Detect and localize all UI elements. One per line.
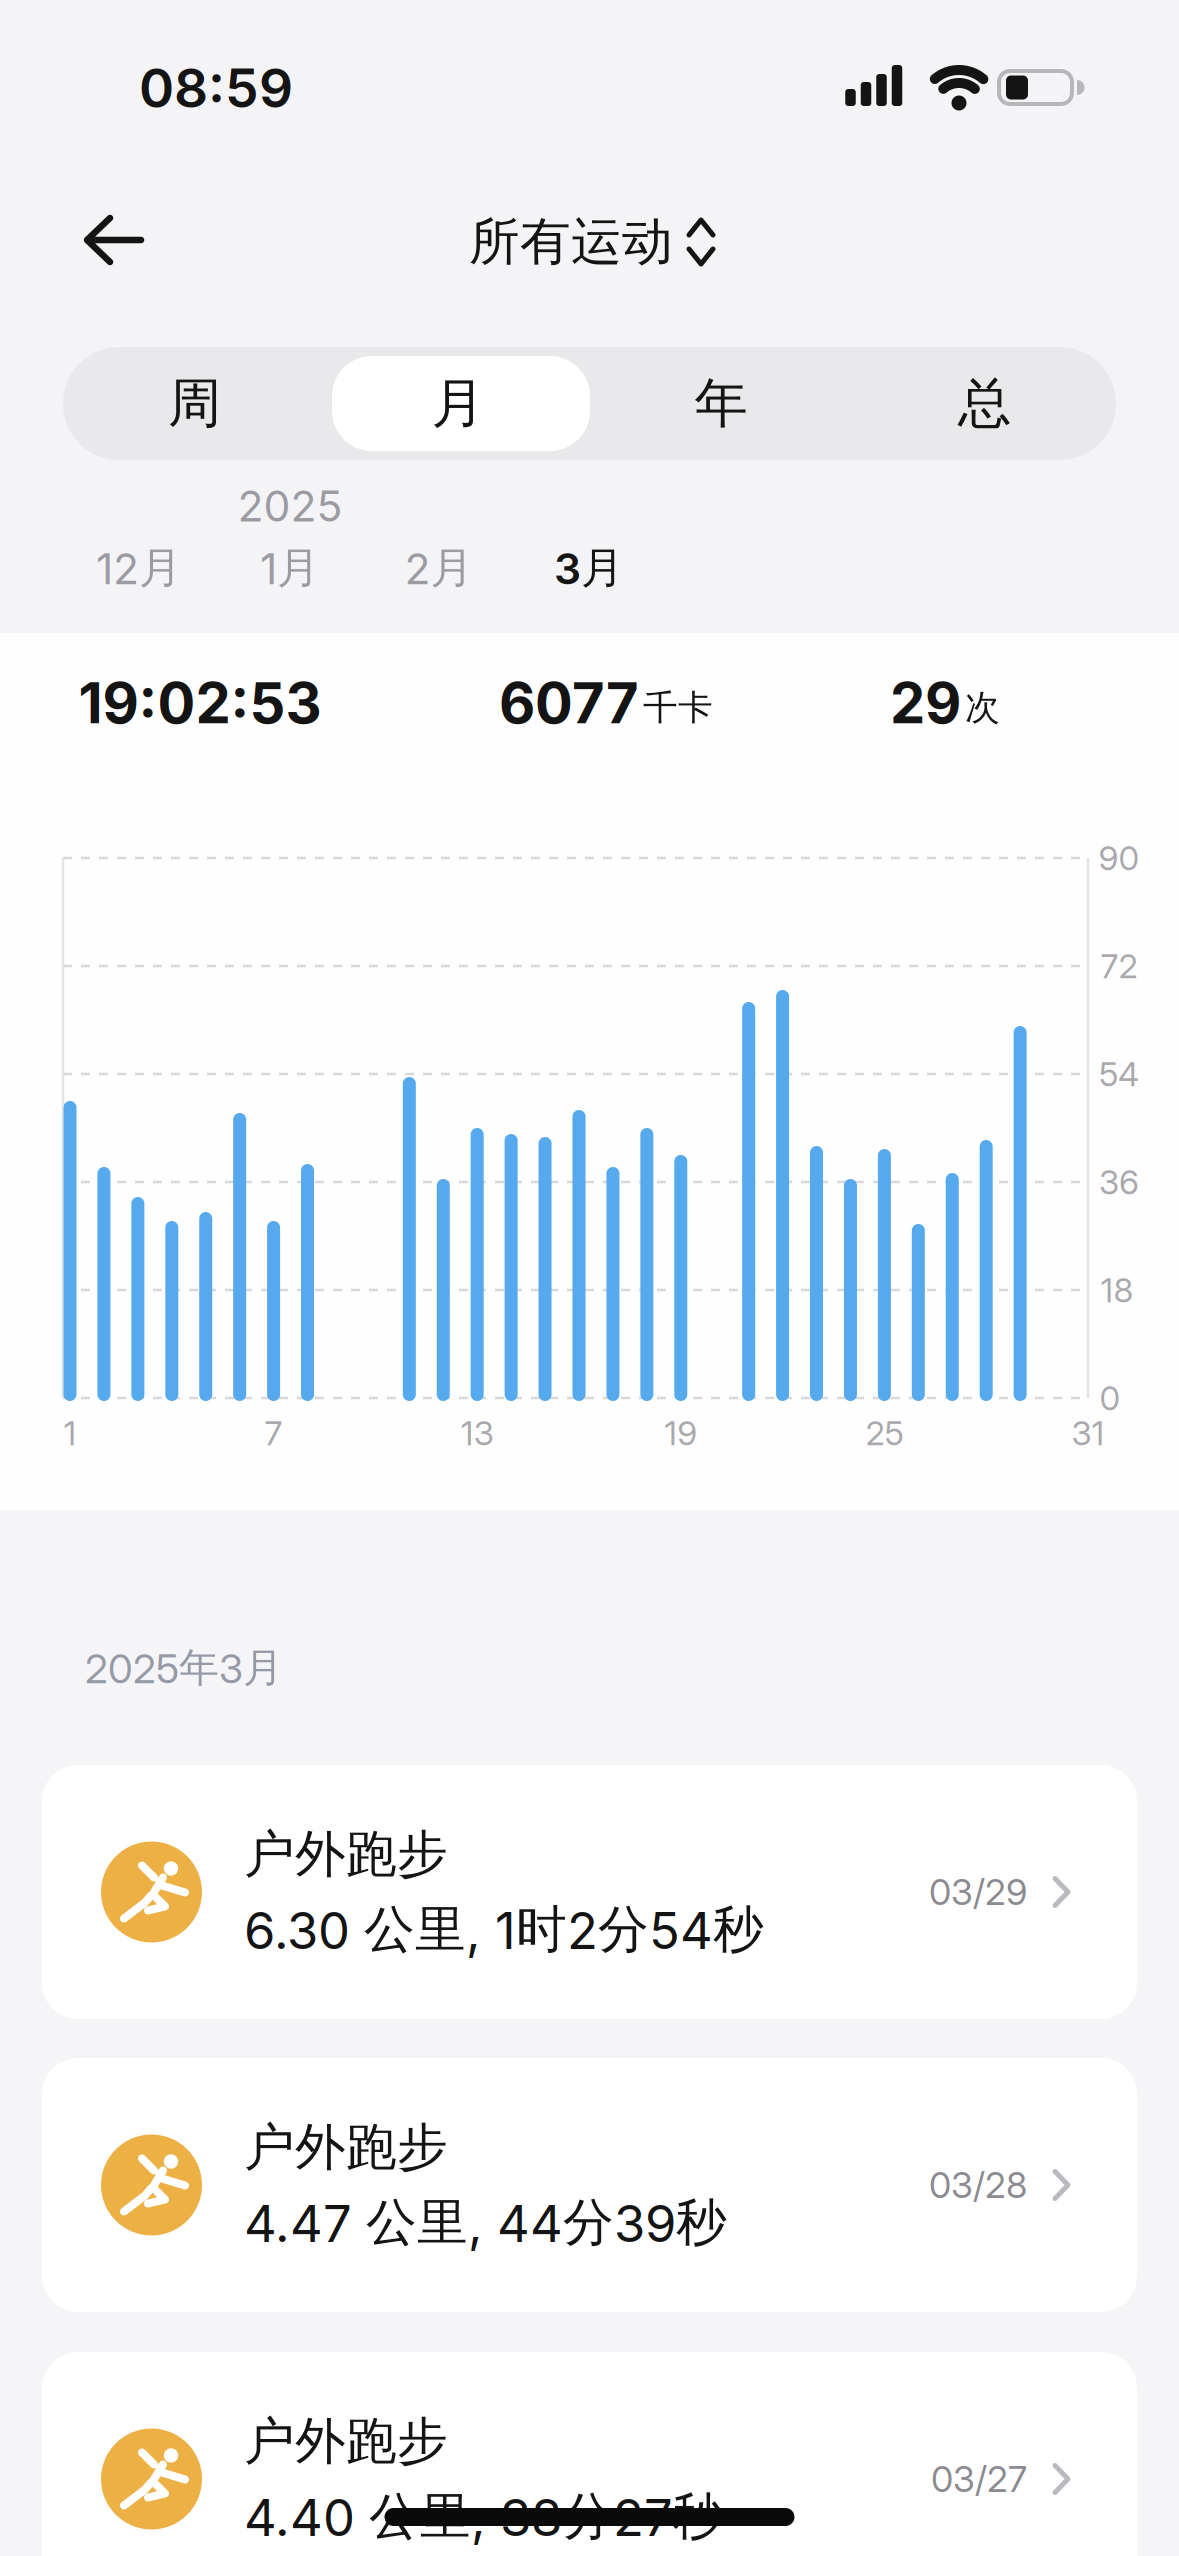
button[interactable]: 户外跑步	[42, 2352, 1137, 2556]
button[interactable]: 户外跑步	[42, 2058, 1137, 2312]
button[interactable]: 年	[592, 348, 850, 458]
button[interactable]: 12月	[74, 532, 204, 604]
staticText: 6.30 公里, 1时2分54秒	[244, 1898, 764, 1961]
staticText: 0	[1099, 1378, 1120, 1418]
staticText: 36	[1099, 1162, 1139, 1202]
staticText: 2025年3月	[85, 1643, 283, 1692]
staticText: 2月	[404, 542, 473, 594]
staticText: 19:02:53	[78, 670, 321, 736]
staticText: 所有运动	[469, 211, 673, 273]
button[interactable]: 周	[66, 348, 324, 458]
staticText: 7	[265, 1413, 283, 1453]
staticText: 03/28	[929, 2164, 1027, 2206]
button[interactable]: 2月	[374, 532, 504, 604]
button[interactable]: Back	[54, 195, 174, 285]
staticText: 月	[431, 371, 484, 436]
staticText: 19	[664, 1413, 697, 1453]
staticText: 90	[1098, 838, 1139, 878]
staticText: 31	[1071, 1413, 1104, 1453]
button[interactable]: 户外跑步	[42, 1765, 1137, 2019]
staticText: 次	[965, 686, 1000, 729]
staticText: 户外跑步	[244, 1823, 448, 1885]
staticText: 1月	[260, 542, 320, 594]
staticText: 户外跑步	[244, 2410, 448, 2472]
staticText: 年	[695, 371, 748, 436]
staticText: 2025	[237, 481, 342, 531]
staticText: 03/27	[931, 2458, 1027, 2500]
staticText: 千卡	[643, 686, 713, 729]
staticText: 18	[1100, 1270, 1133, 1310]
button[interactable]: 3月	[524, 532, 654, 604]
staticText: 54	[1099, 1054, 1139, 1094]
staticText: 08:59	[139, 56, 293, 119]
staticText: 户外跑步	[244, 2116, 448, 2178]
button[interactable]: 1月	[225, 532, 355, 604]
staticText: 72	[1100, 946, 1137, 986]
staticText: 1	[63, 1413, 76, 1453]
staticText: 4.47 公里, 44分39秒	[244, 2191, 727, 2254]
staticText: 总	[958, 371, 1011, 436]
staticText: 周	[168, 371, 221, 436]
staticText: 25	[865, 1413, 903, 1453]
staticText: 03/29	[929, 1871, 1027, 1913]
button[interactable]: 月	[329, 348, 587, 458]
button[interactable]: 所有运动	[469, 211, 715, 273]
staticText: 3月	[554, 542, 624, 594]
staticText: 6077	[499, 670, 639, 736]
staticText: 4.40 公里, 38分27秒	[244, 2485, 724, 2548]
button[interactable]: 总	[855, 348, 1113, 458]
staticText: 12月	[96, 542, 182, 594]
staticText: 29	[890, 670, 961, 736]
staticText: 13	[461, 1413, 494, 1453]
